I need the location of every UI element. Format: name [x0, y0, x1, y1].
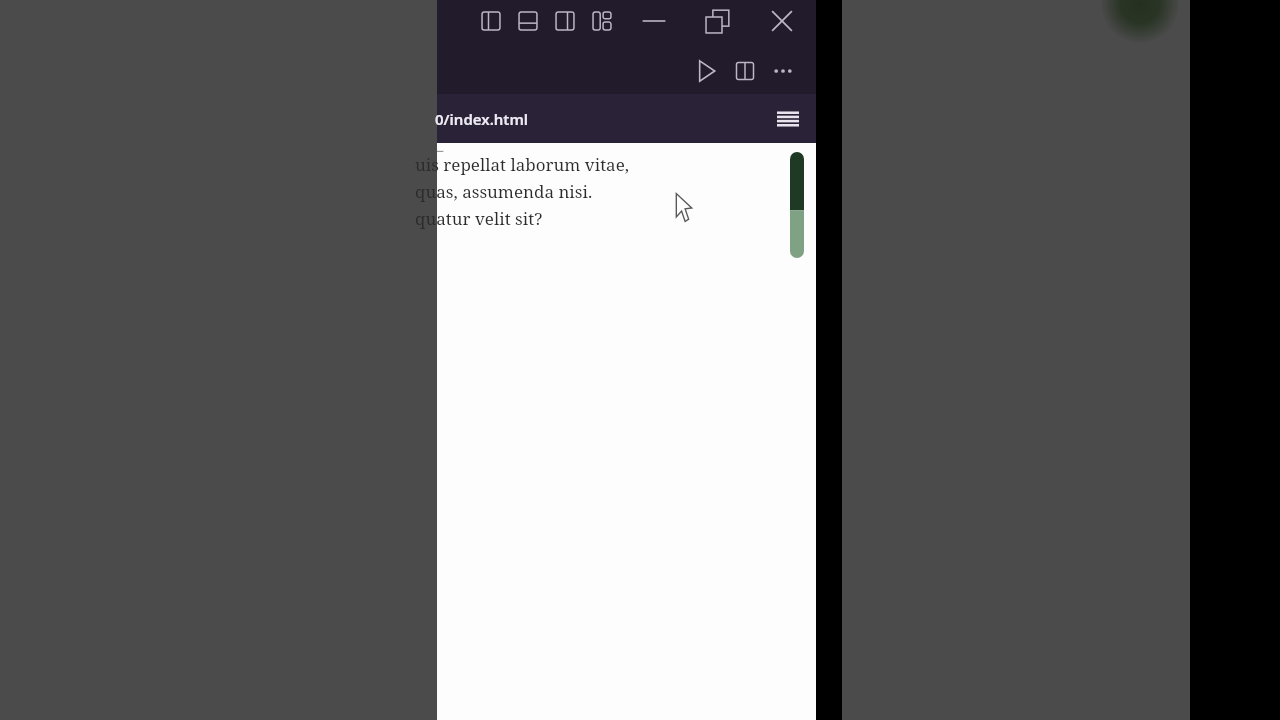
button[interactable]: Split editor [728, 54, 762, 88]
button[interactable]: Customize layout [586, 5, 618, 37]
button[interactable]: Scrollbar [790, 152, 804, 258]
button[interactable]: Restore [699, 2, 737, 40]
staticText: quas, assumenda nisi. [415, 180, 593, 203]
staticText: uis repellat laborum vitae, [415, 153, 630, 176]
button[interactable]: Toggle secondary side bar [549, 5, 581, 37]
button[interactable]: Close [763, 2, 801, 40]
button[interactable]: 0/index.html [437, 94, 765, 143]
staticText: 0/index.html [435, 109, 529, 129]
button[interactable]: Toggle primary side bar [475, 5, 507, 37]
button[interactable]: Menu [765, 96, 811, 142]
button[interactable]: Minimize [635, 2, 673, 40]
button[interactable]: Toggle panel [512, 5, 544, 37]
staticText: quatur velit sit? [415, 207, 543, 230]
button[interactable]: More actions [766, 54, 800, 88]
button[interactable]: Run [689, 54, 723, 88]
